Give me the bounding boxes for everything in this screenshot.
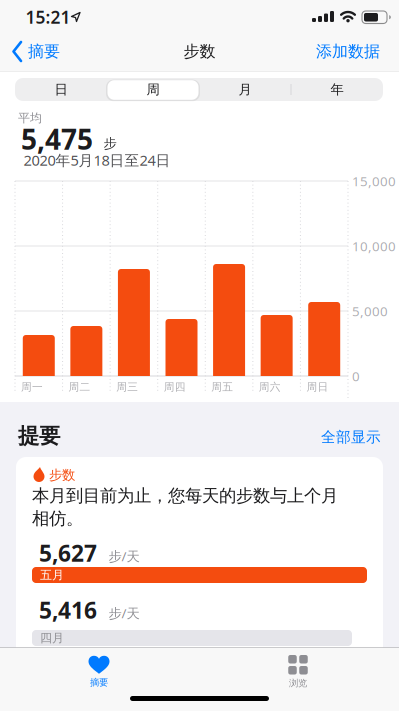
staticText: 周五	[211, 380, 233, 393]
staticText: 日	[54, 81, 67, 98]
staticText: 5,627	[39, 538, 97, 568]
staticText: 周	[146, 81, 159, 98]
staticText: 周日	[306, 380, 328, 393]
button[interactable]: 返回摘要	[12, 41, 60, 62]
staticText: 5,416	[39, 595, 97, 625]
staticText: 步数	[49, 467, 75, 483]
button[interactable]: 添加数据	[316, 42, 380, 61]
staticText: 5,475	[21, 120, 93, 158]
staticText: 提要	[18, 423, 60, 449]
staticText: 步	[103, 135, 116, 152]
staticText: 周一	[21, 380, 43, 393]
staticText: 平均	[18, 111, 42, 125]
staticText: 周三	[116, 380, 138, 393]
staticText: 周六	[259, 380, 281, 393]
staticText: 步/天	[108, 604, 139, 622]
staticText: 四月	[40, 631, 64, 645]
staticText: 添加数据	[316, 42, 380, 61]
staticText: 五月	[40, 568, 64, 582]
staticText: 周四	[164, 380, 186, 393]
staticText: 摘要	[28, 42, 60, 61]
staticText: 10,000	[352, 237, 396, 255]
button[interactable]: 月	[200, 78, 290, 100]
button[interactable]: 浏览	[248, 649, 348, 695]
staticText: 15:21	[25, 5, 70, 28]
staticText: 步数	[183, 42, 215, 61]
button[interactable]: 日	[16, 78, 106, 100]
staticText: 月	[238, 81, 251, 98]
staticText: 浏览	[289, 677, 307, 689]
staticText: 摘要	[90, 677, 108, 688]
staticText: 年	[330, 81, 343, 98]
staticText: 5,000	[352, 302, 388, 320]
button[interactable]: 步数提要	[16, 457, 383, 711]
button[interactable]: 年	[292, 78, 382, 100]
staticText: 步/天	[108, 547, 139, 565]
staticText: 周二	[69, 380, 91, 393]
button[interactable]: 周	[108, 78, 198, 100]
button[interactable]: 全部显示	[321, 428, 381, 446]
staticText: 15,000	[352, 172, 396, 190]
staticText: 本月到目前为止，您每天的步数与上个月 相仿。	[32, 485, 338, 529]
staticText: 0	[352, 367, 360, 385]
button[interactable]: 摘要	[49, 649, 149, 695]
staticText: 2020年5月18日至24日	[23, 150, 170, 170]
staticText: 全部显示	[321, 428, 381, 446]
